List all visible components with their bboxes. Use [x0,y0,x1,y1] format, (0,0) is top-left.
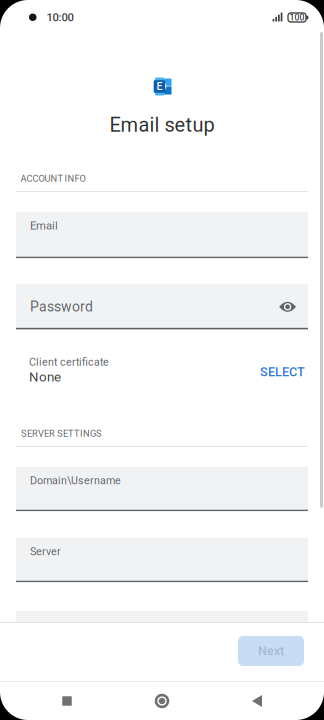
staticText: Email [30,219,58,232]
staticText: Client certificate [29,356,109,368]
staticText: ACCOUNT INFO [20,173,85,184]
button[interactable]: Home [134,682,190,720]
staticText: Server [30,545,61,558]
staticText: 10:00 [46,11,73,24]
staticText: SELECT [260,365,305,379]
button[interactable]: Recent apps [39,682,95,720]
button[interactable]: Password [16,283,308,329]
staticText: Password [30,299,93,315]
staticText: None [29,369,61,385]
button[interactable]: Email [16,211,308,257]
button[interactable]: Domain\Username [16,466,308,510]
staticText: SERVER SETTINGS [21,428,102,439]
staticText: Email setup [109,113,214,137]
button[interactable]: Back [229,682,285,720]
button[interactable]: Next [238,636,304,666]
button[interactable]: Client certificate [16,350,308,394]
staticText: E [156,80,162,93]
staticText: Next [258,644,284,658]
button[interactable]: Server [16,537,308,581]
staticText: 100 [289,12,304,23]
staticText: Domain\Username [30,474,121,487]
